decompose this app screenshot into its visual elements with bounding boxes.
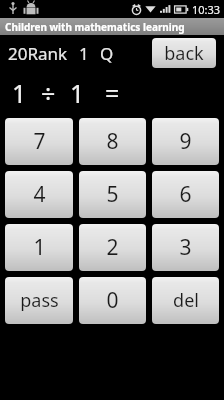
staticText: pass bbox=[20, 288, 59, 313]
staticText: 8 bbox=[106, 127, 119, 156]
staticText: 3 bbox=[179, 233, 192, 262]
staticText: 2 bbox=[106, 233, 119, 262]
button[interactable]: 4 bbox=[5, 171, 73, 218]
button[interactable]: 1 bbox=[5, 224, 73, 271]
staticText: 4 bbox=[33, 180, 46, 209]
button[interactable]: 3 bbox=[152, 224, 219, 271]
staticText: ÷ bbox=[41, 76, 56, 110]
button[interactable]: 0 bbox=[79, 277, 146, 324]
staticText: 6 bbox=[179, 180, 192, 209]
button[interactable]: pass bbox=[5, 277, 73, 324]
staticText: 9 bbox=[179, 127, 192, 156]
staticText: 20Rank bbox=[8, 42, 68, 65]
staticText: Q bbox=[100, 42, 114, 65]
staticText: 1 bbox=[70, 76, 85, 110]
button[interactable]: 2 bbox=[79, 224, 146, 271]
button[interactable]: 7 bbox=[5, 118, 73, 165]
staticText: back bbox=[164, 41, 204, 66]
staticText: 10:33 bbox=[192, 2, 221, 17]
button[interactable]: 8 bbox=[79, 118, 146, 165]
button[interactable]: 6 bbox=[152, 171, 219, 218]
staticText: = bbox=[105, 76, 120, 110]
button[interactable]: del bbox=[152, 277, 219, 324]
staticText: 1 bbox=[79, 42, 89, 65]
staticText: 5 bbox=[106, 180, 119, 209]
staticText: 1 bbox=[33, 233, 46, 262]
staticText: 0 bbox=[106, 286, 119, 315]
staticText: 1 bbox=[12, 76, 27, 110]
button[interactable]: 5 bbox=[79, 171, 146, 218]
staticText: del bbox=[173, 288, 199, 313]
button[interactable]: 9 bbox=[152, 118, 219, 165]
staticText: Children with mathematics learning bbox=[5, 20, 185, 34]
staticText: 7 bbox=[33, 127, 46, 156]
button[interactable]: back bbox=[152, 38, 216, 68]
